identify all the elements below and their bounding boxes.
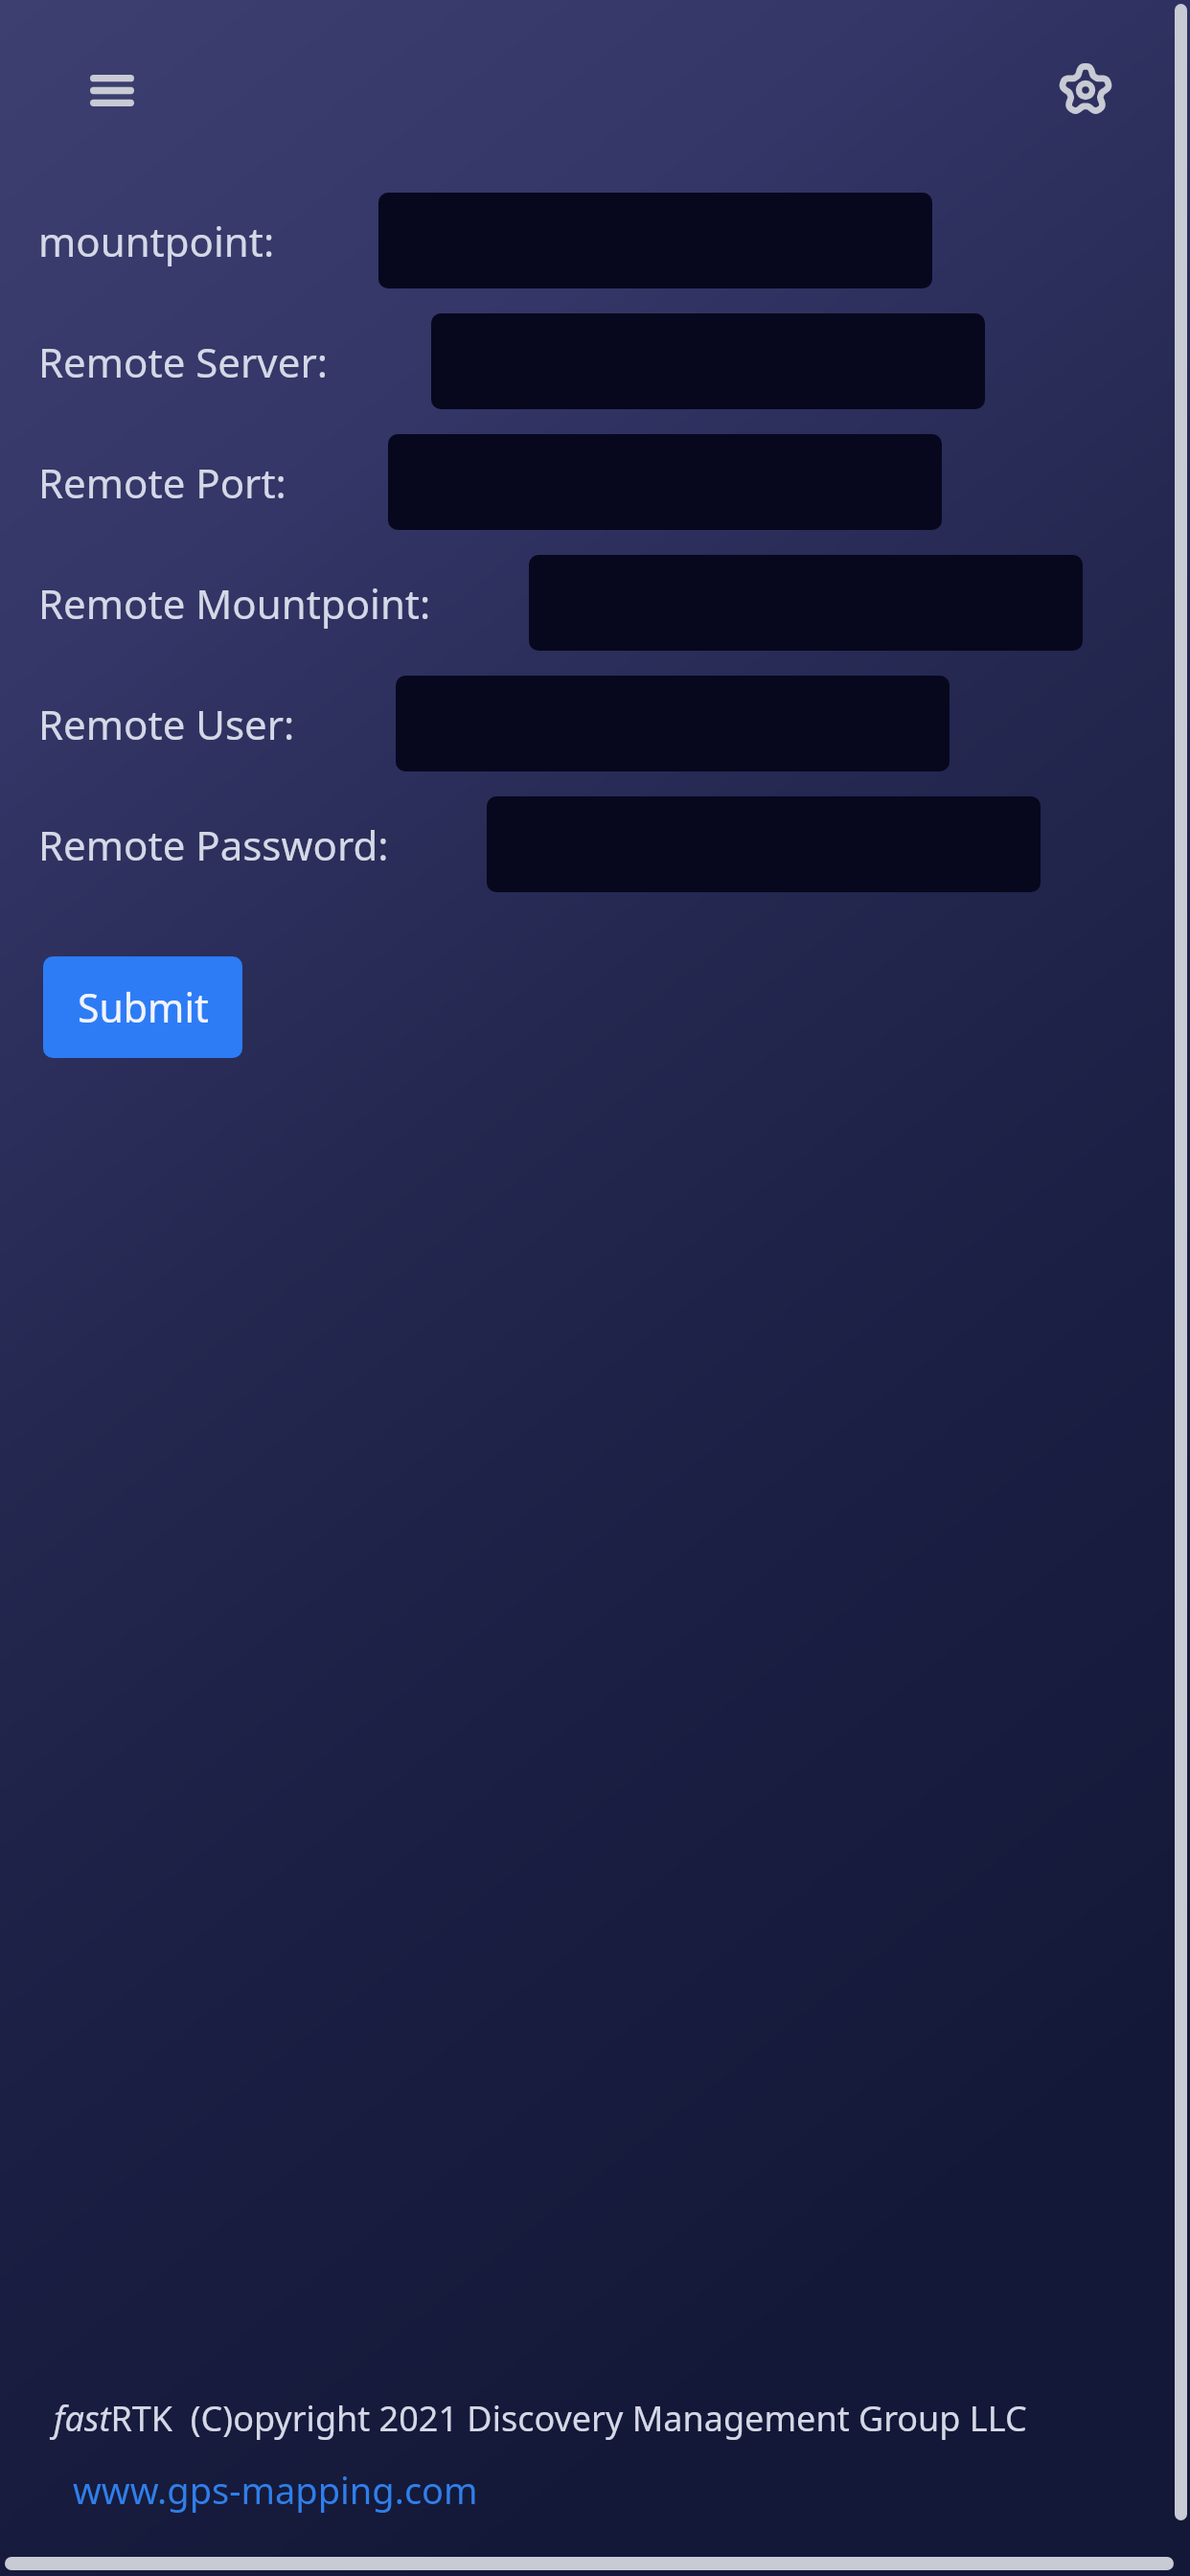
staticText: Remote Mountpoint: bbox=[38, 576, 431, 631]
staticText: Remote User: bbox=[38, 697, 295, 751]
staticText: Remote Password: bbox=[38, 817, 389, 872]
button[interactable] bbox=[388, 434, 942, 530]
button[interactable] bbox=[431, 313, 985, 409]
button[interactable] bbox=[378, 193, 932, 288]
staticText: Submit bbox=[78, 980, 209, 1034]
staticText: Remote Server: bbox=[38, 334, 328, 389]
staticText: fastRTK (C)opyright 2021 Discovery Manag… bbox=[54, 2395, 1027, 2442]
button[interactable]: www.gps-mapping.com bbox=[73, 2465, 478, 2515]
staticText: Remote Port: bbox=[38, 455, 286, 510]
staticText: www.gps-mapping.com bbox=[73, 2465, 478, 2515]
button[interactable]: Open navigation menu bbox=[67, 52, 157, 128]
staticText: mountpoint: bbox=[38, 214, 275, 268]
button[interactable]: Submit bbox=[43, 956, 242, 1058]
button[interactable] bbox=[487, 796, 1041, 892]
button[interactable]: Settings bbox=[1039, 43, 1133, 137]
